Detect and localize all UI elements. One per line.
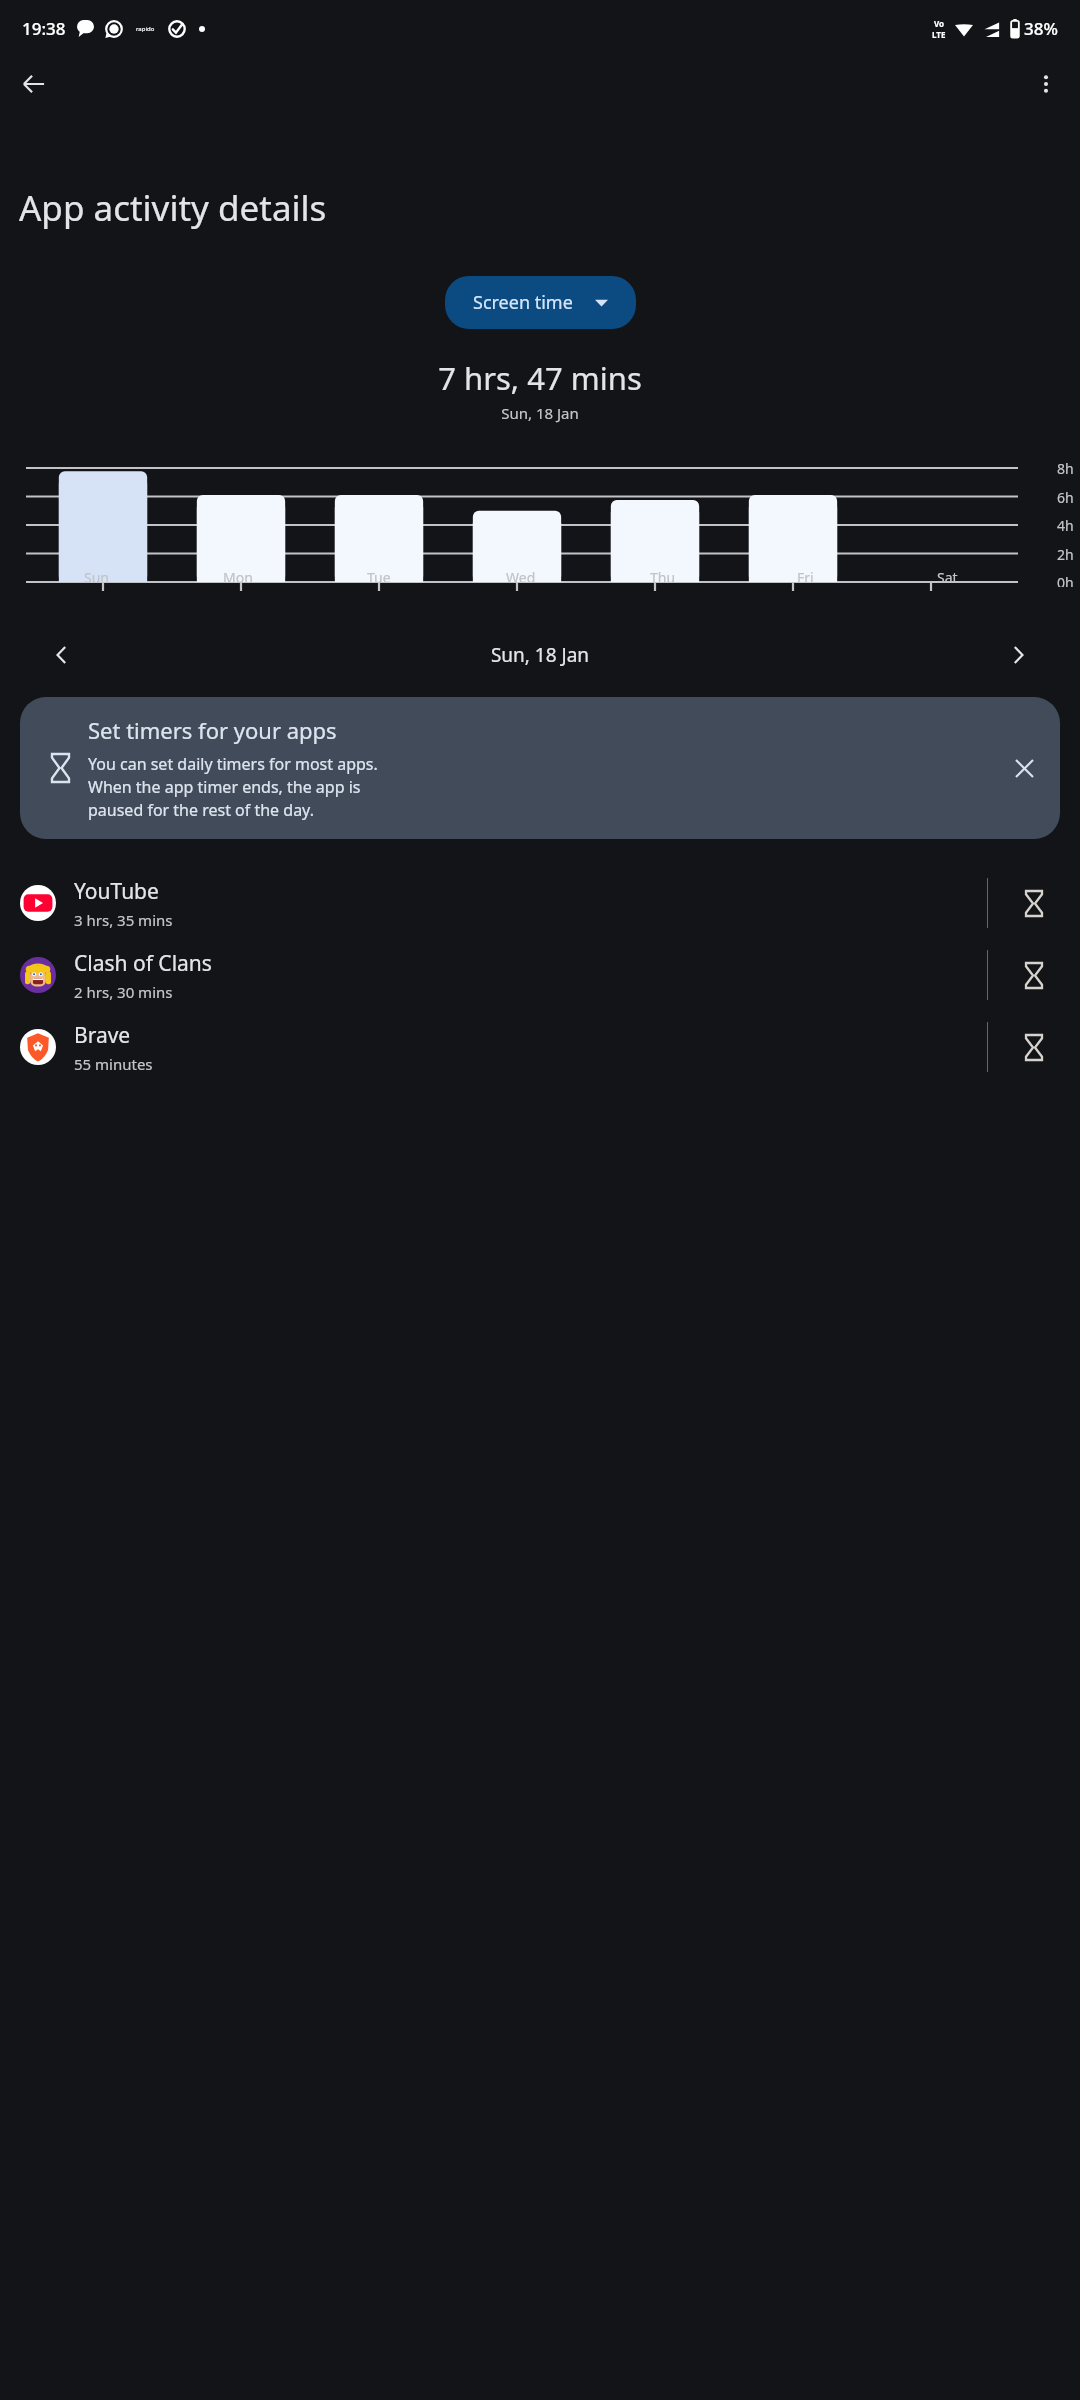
staticText: Clash of Clans xyxy=(74,949,212,978)
staticText: Vo xyxy=(934,18,945,29)
staticText: LTE xyxy=(932,29,946,40)
button[interactable]: Set timers for your apps xyxy=(20,697,1060,839)
staticText: 4h xyxy=(1057,516,1074,535)
staticText: Fri xyxy=(797,568,814,587)
staticText: 2 hrs, 30 mins xyxy=(74,982,173,1002)
button[interactable]: Back xyxy=(10,60,58,108)
staticText: Mon xyxy=(223,568,253,587)
button[interactable]: Dismiss xyxy=(1000,744,1048,792)
staticText: 6h xyxy=(1057,488,1074,507)
staticText: App activity details xyxy=(19,184,327,232)
staticText: Brave xyxy=(74,1021,131,1050)
button[interactable]: Screen time xyxy=(445,276,636,329)
staticText: Sun, 18 Jan xyxy=(0,403,1080,423)
staticText: 55 minutes xyxy=(74,1054,153,1074)
staticText: 7 hrs, 47 mins xyxy=(0,357,1080,399)
button[interactable]: Set timer for YouTube xyxy=(988,867,1080,939)
button[interactable]: Next day xyxy=(996,633,1040,677)
staticText: 0h xyxy=(1057,573,1074,587)
staticText: Sun xyxy=(84,568,109,587)
staticText: rapido xyxy=(136,25,155,33)
staticText: Tue xyxy=(367,568,391,587)
button[interactable]: Set timer for Brave xyxy=(988,1011,1080,1083)
staticText: Screen time xyxy=(473,290,573,315)
staticText: 38% xyxy=(1024,17,1058,40)
staticText: YouTube xyxy=(74,877,159,906)
staticText: Sat xyxy=(937,568,958,587)
button[interactable]: More options xyxy=(1022,60,1070,108)
staticText: 8h xyxy=(1057,459,1074,478)
button[interactable]: Clash of Clans xyxy=(0,939,1080,1011)
button[interactable]: Brave xyxy=(0,1011,1080,1083)
staticText: Thu xyxy=(650,568,676,587)
button[interactable]: YouTube xyxy=(0,867,1080,939)
staticText: 2h xyxy=(1057,545,1074,564)
staticText: Wed xyxy=(506,568,536,587)
staticText: Sun, 18 Jan xyxy=(84,642,996,668)
button[interactable]: Previous day xyxy=(40,633,84,677)
button[interactable]: Set timer for Clash of Clans xyxy=(988,939,1080,1011)
staticText: 19:38 xyxy=(22,17,66,40)
staticText: 3 hrs, 35 mins xyxy=(74,910,173,930)
staticText: You can set daily timers for most apps. … xyxy=(88,753,378,821)
staticText: Set timers for your apps xyxy=(88,715,337,745)
